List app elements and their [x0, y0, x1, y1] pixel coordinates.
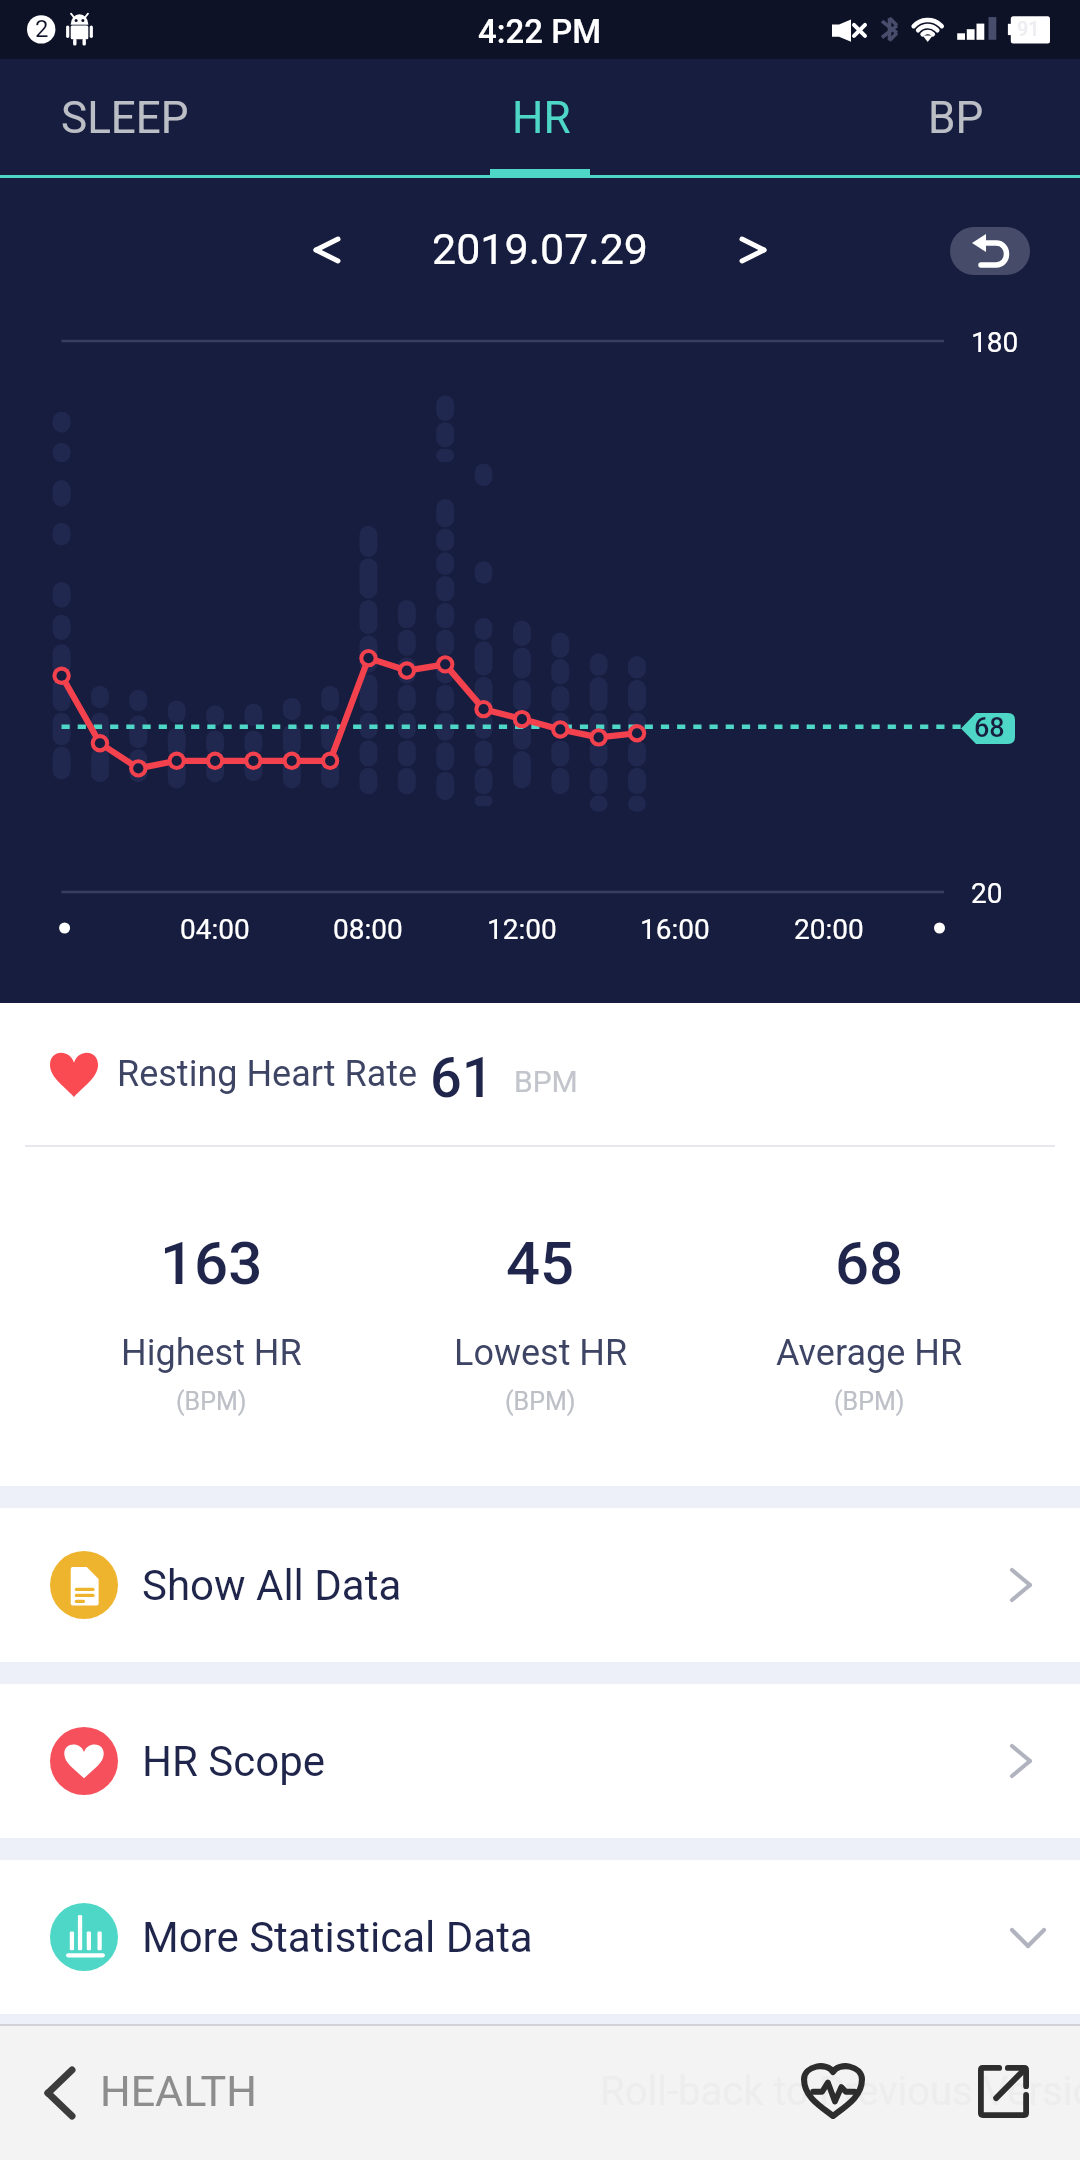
staticText: (BPM) — [505, 1387, 576, 1416]
button[interactable]: Open in new window — [978, 2065, 1029, 2118]
staticText: Average HR — [776, 1332, 963, 1374]
staticText: 12:00 — [487, 913, 557, 946]
staticText: 20 — [971, 877, 1003, 910]
staticText: BPM — [514, 1064, 578, 1099]
button[interactable]: Reset to today — [950, 227, 1030, 275]
button[interactable]: HEALTH — [40, 2067, 257, 2119]
button[interactable]: More Statistical Data — [0, 1860, 1080, 2014]
staticText: HR — [512, 92, 571, 144]
staticText: 2 — [35, 15, 49, 43]
staticText: 20:00 — [794, 913, 864, 946]
staticText: HEALTH — [100, 2066, 257, 2116]
staticText: 2019.07.29 — [432, 224, 649, 274]
button[interactable]: Next day — [713, 214, 793, 294]
button[interactable]: SLEEP — [0, 59, 275, 178]
staticText: 04:00 — [180, 913, 250, 946]
staticText: (BPM) — [176, 1387, 247, 1416]
button[interactable]: Show All Data — [0, 1508, 1080, 1662]
button[interactable]: Previous day — [287, 214, 367, 294]
staticText: Lowest HR — [454, 1332, 628, 1374]
staticText: Roll-back to Previous Version — [600, 2068, 1080, 2115]
staticText: 16:00 — [640, 913, 710, 946]
button[interactable]: HR Scope — [0, 1684, 1080, 1838]
button[interactable]: HR — [391, 59, 691, 178]
staticText: 4:22 PM — [478, 12, 602, 51]
staticText: HR Scope — [142, 1737, 325, 1786]
staticText: Resting Heart Rate — [117, 1053, 418, 1095]
staticText: 163 — [160, 1228, 263, 1298]
staticText: 68 — [835, 1228, 904, 1298]
staticText: Show All Data — [142, 1561, 402, 1610]
staticText: (BPM) — [834, 1387, 905, 1416]
staticText: 68 — [974, 712, 1005, 744]
button[interactable]: BP — [806, 59, 1080, 178]
staticText: 45 — [506, 1228, 575, 1298]
staticText: 180 — [971, 326, 1019, 359]
staticText: More Statistical Data — [142, 1913, 533, 1962]
staticText: Highest HR — [121, 1332, 302, 1374]
staticText: 08:00 — [333, 913, 403, 946]
staticText: BP — [928, 92, 984, 144]
staticText: 91 — [1017, 17, 1040, 40]
staticText: SLEEP — [61, 92, 189, 144]
button[interactable]: Heart rate monitor — [801, 2061, 865, 2119]
staticText: 61 — [430, 1045, 494, 1111]
